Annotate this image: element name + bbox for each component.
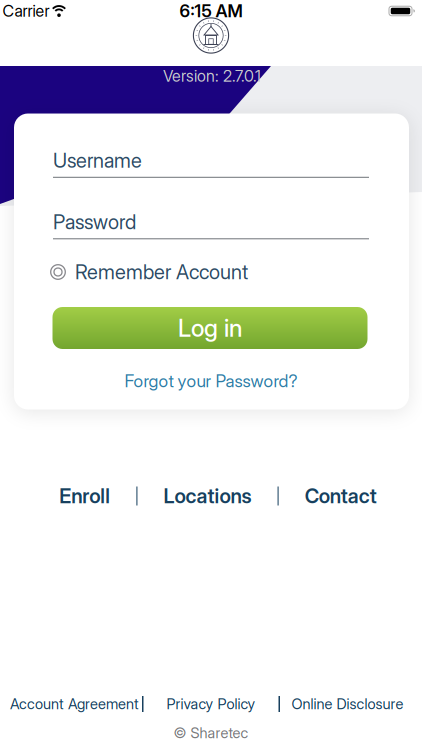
staticText: Log in bbox=[178, 314, 242, 342]
staticText: Version: 2.7.0.1 bbox=[163, 67, 261, 85]
staticText: Enroll bbox=[59, 484, 110, 508]
staticText: © Sharetec bbox=[173, 724, 248, 742]
button[interactable]: Online Disclosure bbox=[280, 695, 415, 713]
staticText: Privacy Policy bbox=[166, 695, 255, 713]
button[interactable]: Enroll bbox=[59, 484, 110, 508]
staticText: Forgot your Password? bbox=[124, 371, 297, 391]
staticText: Password bbox=[53, 210, 136, 234]
button[interactable]: Forgot your Password? bbox=[124, 371, 297, 391]
button[interactable]: Log in bbox=[52, 307, 367, 349]
staticText: Online Disclosure bbox=[291, 695, 403, 713]
staticText: Locations bbox=[163, 484, 251, 508]
textField[interactable]: Password bbox=[53, 210, 369, 239]
button[interactable]: Remember Account bbox=[49, 260, 373, 284]
button[interactable]: Privacy Policy bbox=[143, 695, 278, 713]
staticText: Carrier bbox=[2, 2, 49, 20]
button[interactable]: Account Agreement bbox=[7, 695, 142, 713]
textField[interactable]: Username bbox=[53, 149, 369, 178]
staticText: Remember Account bbox=[75, 260, 248, 284]
staticText: 6:15 AM bbox=[179, 1, 242, 21]
button[interactable]: Contact bbox=[305, 484, 377, 508]
button[interactable]: Locations bbox=[163, 484, 251, 508]
staticText: Username bbox=[53, 149, 142, 172]
staticText: Account Agreement bbox=[10, 695, 139, 713]
staticText: Contact bbox=[305, 484, 377, 508]
